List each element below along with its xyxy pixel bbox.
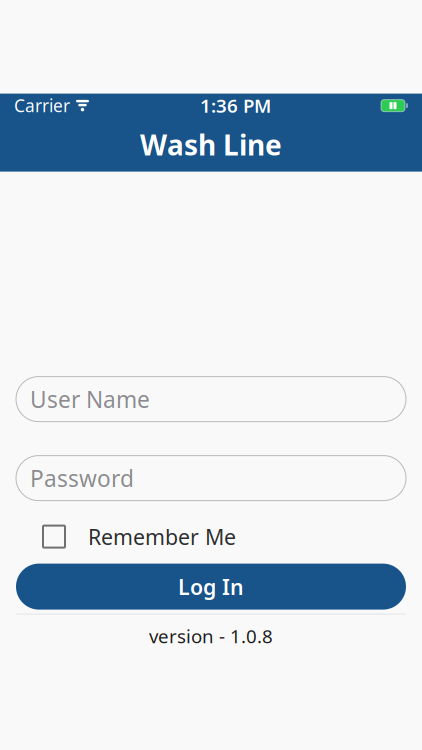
staticText: Carrier [14, 94, 70, 117]
staticText: Remember Me [88, 522, 236, 551]
staticText: Log In [178, 572, 244, 601]
staticText: 1:36 PM [200, 93, 271, 118]
staticText: Wash Line [140, 126, 282, 163]
staticText: User Name [30, 384, 150, 414]
button[interactable]: Remember Me [0, 520, 422, 554]
staticText: version - 1.0.8 [149, 624, 273, 648]
button[interactable]: Log In [16, 564, 406, 610]
staticText: Password [30, 463, 134, 493]
